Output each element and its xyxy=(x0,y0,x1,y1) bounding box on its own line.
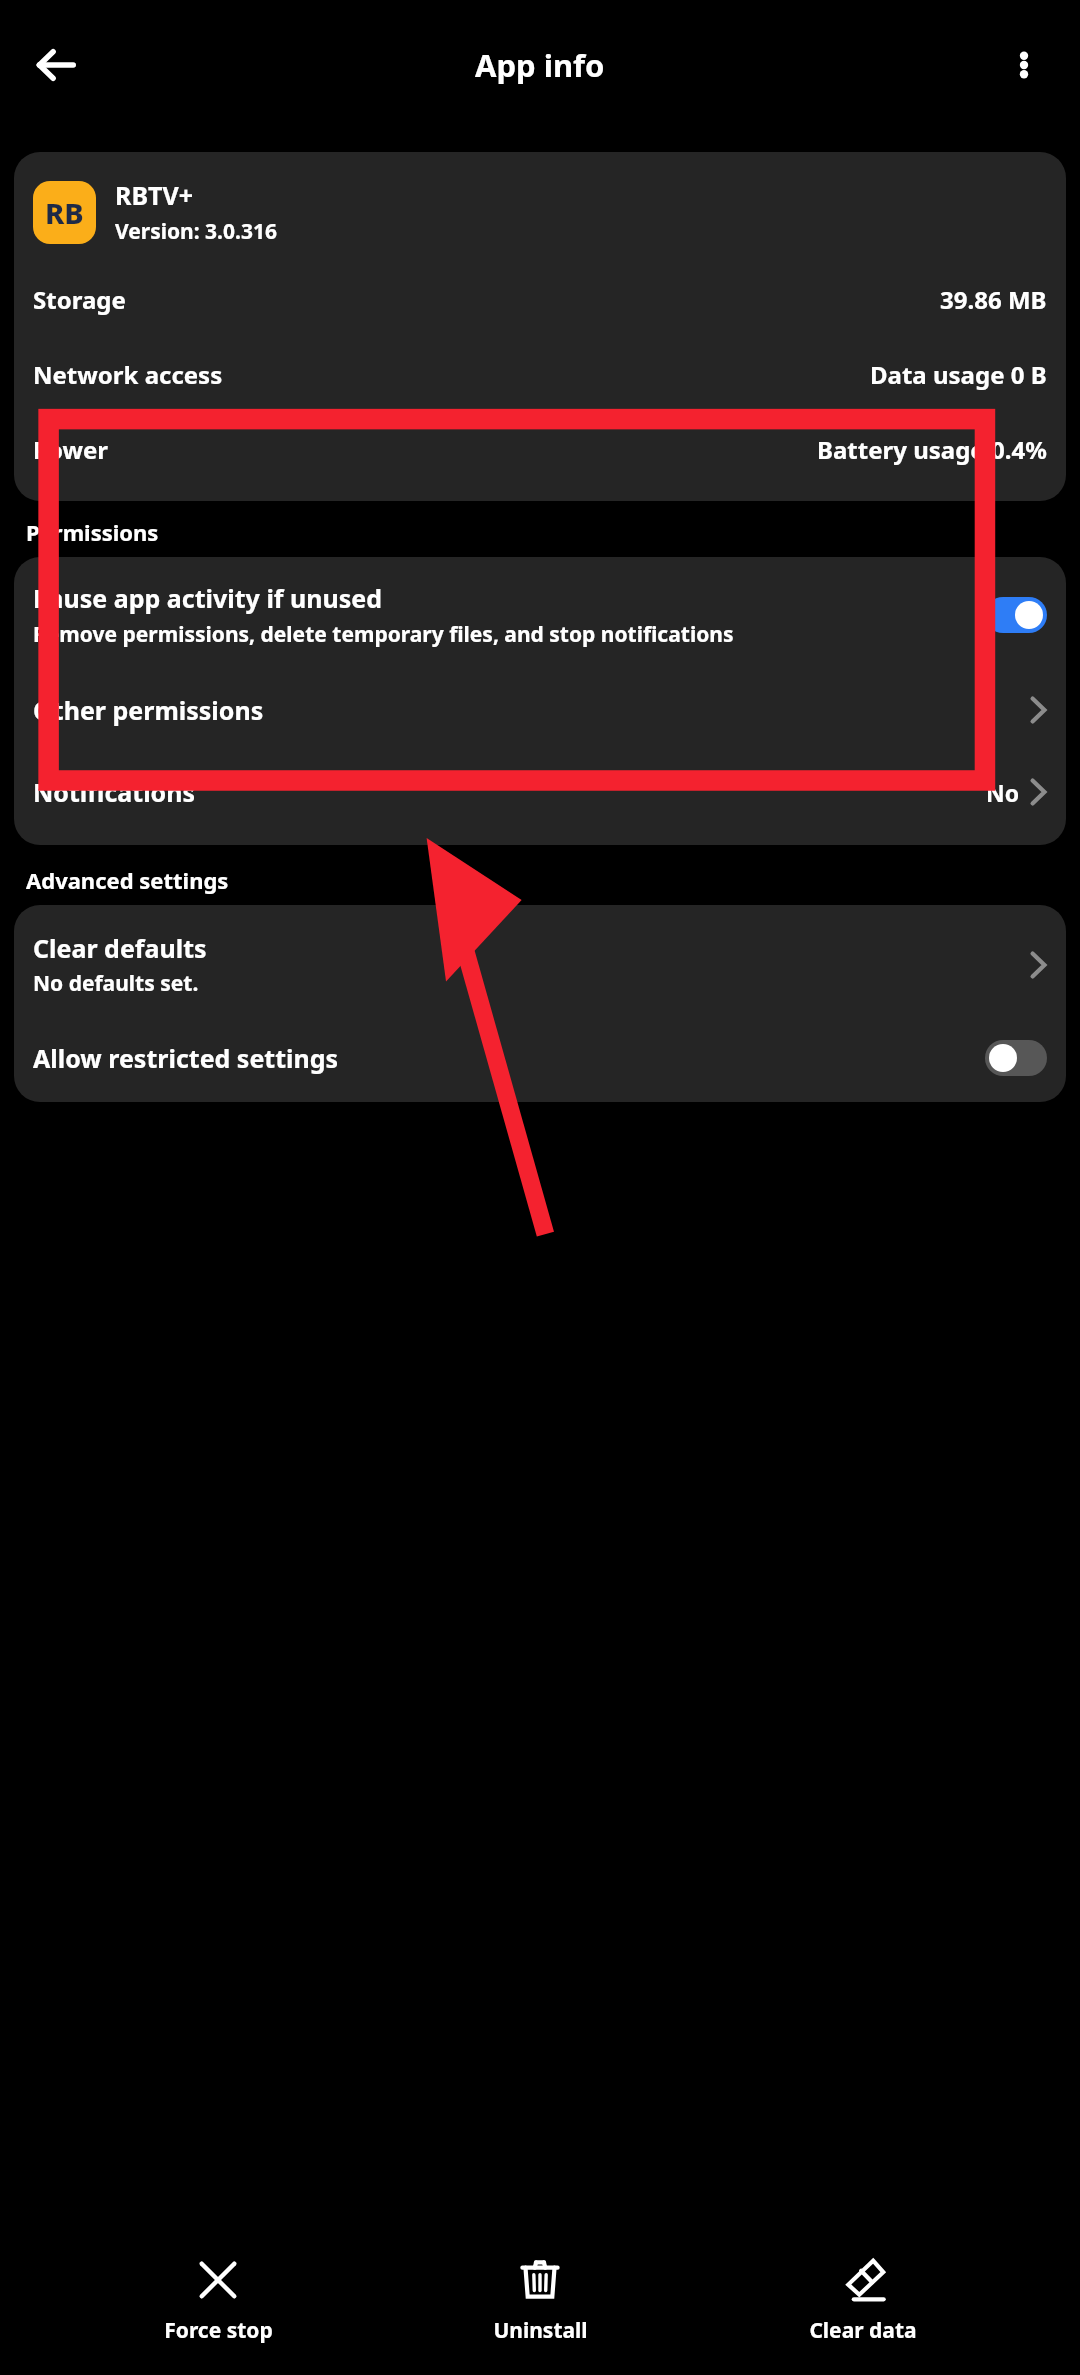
button[interactable]: Clear defaults xyxy=(14,905,1066,1018)
staticText: Network access xyxy=(33,358,223,391)
button[interactable]: Storage xyxy=(14,262,1066,337)
staticText: Uninstall xyxy=(493,2316,588,2345)
button[interactable]: Clear data xyxy=(758,2248,968,2353)
staticText: Permissions xyxy=(26,517,159,547)
staticText: Version: 3.0.316 xyxy=(115,217,277,246)
staticText: Remove permissions, delete temporary fil… xyxy=(33,620,734,649)
button[interactable]: Force stop xyxy=(113,2248,323,2353)
button[interactable]: RB xyxy=(14,152,1066,262)
staticText: Advanced settings xyxy=(26,865,229,895)
staticText: Other permissions xyxy=(33,693,264,727)
staticText: Storage xyxy=(33,283,126,316)
button[interactable]: Notifications xyxy=(14,751,1066,833)
staticText: RBTV+ xyxy=(115,178,194,212)
staticText: Power xyxy=(33,433,109,466)
button[interactable]: Toggle on xyxy=(985,597,1047,633)
button[interactable]: Allow restricted settings xyxy=(14,1018,1066,1102)
button[interactable]: Pause app activity if unused xyxy=(14,557,1066,669)
staticText: Clear data xyxy=(809,2316,917,2345)
button[interactable]: Other permissions xyxy=(14,669,1066,751)
staticText: No xyxy=(986,777,1020,808)
staticText: Pause app activity if unused xyxy=(33,581,383,615)
staticText: Force stop xyxy=(164,2316,273,2345)
staticText: RB xyxy=(45,193,84,232)
staticText: Data usage 0 B xyxy=(870,358,1047,391)
staticText: Clear defaults xyxy=(33,931,207,965)
button[interactable]: Network access xyxy=(14,337,1066,412)
staticText: Notifications xyxy=(33,775,196,809)
staticText: Battery usage 0.4% xyxy=(817,433,1047,466)
button[interactable]: Toggle off xyxy=(985,1040,1047,1076)
button[interactable]: Power xyxy=(14,412,1066,487)
staticText: No defaults set. xyxy=(33,969,199,998)
button[interactable]: More options xyxy=(994,35,1054,95)
button[interactable]: Back xyxy=(24,33,88,97)
staticText: 39.86 MB xyxy=(940,283,1047,316)
button[interactable]: Uninstall xyxy=(435,2248,645,2353)
staticText: App info xyxy=(475,44,605,86)
staticText: Allow restricted settings xyxy=(33,1041,985,1075)
